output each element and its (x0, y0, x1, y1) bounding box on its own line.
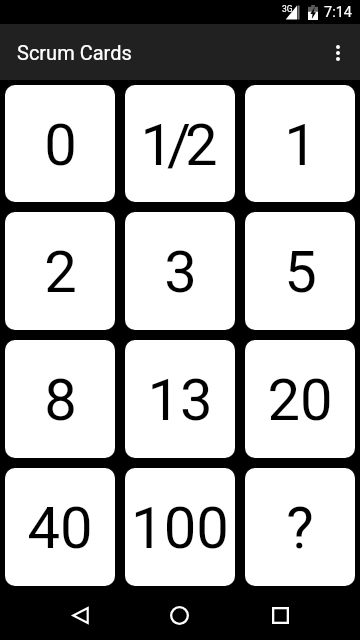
button[interactable]: ? (245, 468, 355, 586)
staticText: 8 (44, 366, 77, 434)
staticText: 2 (44, 238, 77, 306)
staticText: 7:14 (324, 4, 352, 21)
button[interactable]: 3 (125, 212, 235, 330)
button[interactable]: 5 (245, 212, 355, 330)
button[interactable]: Home (155, 591, 203, 639)
staticText: ? (286, 494, 314, 562)
staticText: 100 (131, 494, 229, 562)
staticText: 0 (44, 111, 77, 179)
staticText: 20 (267, 366, 333, 434)
button[interactable]: 2 (5, 212, 115, 330)
button[interactable]: 100 (125, 468, 235, 586)
staticText: 5 (284, 238, 317, 306)
staticText: 13 (147, 366, 213, 434)
button[interactable]: 13 (125, 340, 235, 458)
button[interactable]: 1/2 (125, 85, 235, 202)
button[interactable]: 0 (5, 85, 115, 202)
staticText: 40 (27, 494, 93, 562)
button[interactable]: More options (316, 24, 360, 80)
button[interactable]: 1 (245, 85, 355, 202)
button[interactable]: 20 (245, 340, 355, 458)
button[interactable]: Back (56, 591, 104, 639)
staticText: Scrum Cards (17, 41, 132, 64)
staticText: 1/2 (140, 111, 212, 179)
button[interactable]: 40 (5, 468, 115, 586)
button[interactable]: Recent apps (256, 591, 304, 639)
button[interactable]: 8 (5, 340, 115, 458)
staticText: 3 (164, 238, 197, 306)
staticText: 3G (282, 4, 293, 14)
staticText: 1 (284, 111, 317, 179)
